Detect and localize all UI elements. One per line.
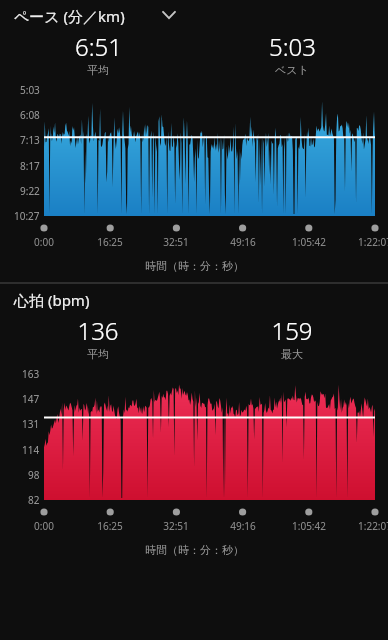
button[interactable]: 159 — [242, 314, 342, 361]
staticText: 32:51 — [163, 235, 189, 249]
staticText: 32:51 — [163, 519, 189, 533]
staticText: 時間（時：分：秒） — [145, 543, 244, 557]
staticText: 9:22 — [20, 184, 40, 198]
staticText: 平均 — [87, 347, 109, 361]
staticText: 最大 — [281, 347, 303, 361]
button[interactable]: Change metric — [156, 2, 182, 28]
staticText: 98 — [28, 468, 40, 482]
button[interactable]: 136 — [48, 314, 148, 361]
staticText: 6:51 — [75, 30, 122, 63]
staticText: 163 — [22, 367, 40, 381]
staticText: 7:13 — [20, 133, 40, 147]
staticText: 0:00 — [34, 519, 54, 533]
staticText: 1:05:42 — [292, 519, 326, 533]
staticText: 6:08 — [20, 108, 40, 122]
staticText: 114 — [22, 443, 40, 457]
button[interactable]: 心拍 (bpm) — [12, 288, 92, 312]
staticText: 心拍 (bpm) — [14, 290, 90, 310]
staticText: 0:00 — [34, 235, 54, 249]
staticText: 5:03 — [20, 83, 40, 97]
staticText: 1:22:07 — [358, 519, 388, 533]
staticText: ベスト — [275, 63, 309, 77]
staticText: 131 — [22, 417, 40, 431]
staticText: 8:17 — [20, 159, 40, 173]
staticText: 1:22:07 — [358, 235, 388, 249]
staticText: 1:05:42 — [292, 235, 326, 249]
staticText: 16:25 — [97, 519, 123, 533]
staticText: 147 — [22, 392, 40, 406]
staticText: 16:25 — [97, 235, 123, 249]
staticText: 82 — [28, 493, 40, 507]
staticText: 10:27 — [14, 209, 40, 223]
button[interactable]: 6:51 — [48, 30, 148, 77]
staticText: 49:16 — [230, 235, 256, 249]
staticText: 159 — [271, 314, 313, 347]
staticText: 49:16 — [230, 519, 256, 533]
staticText: 136 — [77, 314, 119, 347]
staticText: 時間（時：分：秒） — [145, 259, 244, 273]
button[interactable]: 5:03 — [242, 30, 342, 77]
staticText: 5:03 — [269, 30, 316, 63]
staticText: ペース (分／km) — [14, 6, 125, 26]
button[interactable]: ペース (分／km) — [12, 4, 127, 28]
staticText: 平均 — [87, 63, 109, 77]
